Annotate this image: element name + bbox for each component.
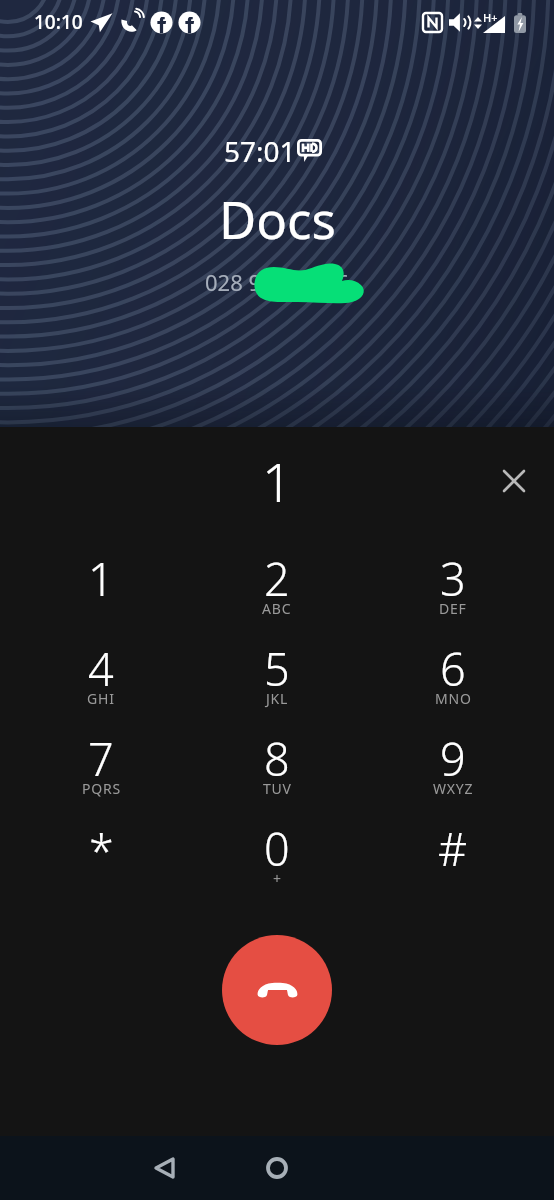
button[interactable]: 3 bbox=[365, 534, 541, 624]
button[interactable]: # bbox=[365, 804, 541, 894]
button[interactable]: 5 bbox=[189, 624, 365, 714]
staticText: 2 bbox=[264, 548, 290, 609]
staticText: 1 bbox=[88, 548, 114, 609]
button[interactable]: 0 bbox=[189, 804, 365, 894]
staticText: DEF bbox=[439, 599, 467, 618]
staticText: # bbox=[438, 818, 468, 879]
staticText: PQRS bbox=[82, 779, 121, 798]
button[interactable]: 1 bbox=[13, 534, 189, 624]
staticText: 57:01 bbox=[224, 132, 296, 170]
staticText: * bbox=[89, 820, 114, 881]
button[interactable]: * bbox=[13, 804, 189, 894]
button[interactable]: 7 bbox=[13, 714, 189, 804]
staticText: Docs bbox=[219, 184, 336, 253]
staticText: 7 bbox=[88, 728, 114, 789]
staticText: 3 bbox=[440, 548, 466, 609]
staticText: 028 90000006 bbox=[205, 267, 350, 297]
staticText: JKL bbox=[266, 689, 289, 708]
staticText: 8 bbox=[264, 728, 290, 789]
staticText: 6 bbox=[440, 638, 466, 699]
button[interactable]: 9 bbox=[365, 714, 541, 804]
staticText: 0 bbox=[264, 818, 290, 879]
staticText: 9 bbox=[440, 728, 466, 789]
staticText: 4 bbox=[88, 638, 114, 699]
staticText: 10:10 bbox=[34, 9, 83, 35]
staticText: 5 bbox=[264, 638, 290, 699]
staticText: + bbox=[273, 869, 282, 888]
staticText: GHI bbox=[87, 689, 115, 708]
button[interactable]: Home bbox=[252, 1143, 302, 1193]
staticText: TUV bbox=[263, 779, 292, 798]
staticText: WXYZ bbox=[433, 779, 474, 798]
button[interactable]: 6 bbox=[365, 624, 541, 714]
staticText: 1 bbox=[262, 445, 293, 517]
button[interactable]: Clear bbox=[489, 456, 539, 506]
button[interactable]: End call bbox=[222, 935, 332, 1045]
staticText: MNO bbox=[435, 689, 472, 708]
button[interactable]: 4 bbox=[13, 624, 189, 714]
button[interactable]: Back bbox=[139, 1143, 189, 1193]
staticText: ABC bbox=[262, 599, 292, 618]
button[interactable]: 2 bbox=[189, 534, 365, 624]
button[interactable]: 8 bbox=[189, 714, 365, 804]
staticText: H+ bbox=[483, 10, 498, 25]
